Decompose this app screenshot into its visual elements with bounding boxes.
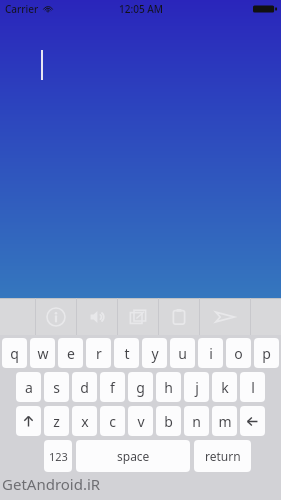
staticText: i bbox=[209, 344, 213, 363]
staticText: GetAndroid.iR bbox=[2, 474, 101, 494]
button[interactable]: Sound bbox=[77, 298, 117, 335]
button[interactable]: g bbox=[128, 372, 153, 402]
button[interactable]: c bbox=[100, 406, 125, 436]
button[interactable]: k bbox=[212, 372, 237, 402]
button[interactable]: o bbox=[226, 338, 251, 368]
button[interactable]: d bbox=[72, 372, 97, 402]
staticText: n bbox=[192, 412, 201, 431]
button[interactable]: n bbox=[184, 406, 209, 436]
button[interactable]: z bbox=[44, 406, 69, 436]
staticText: t bbox=[124, 344, 130, 363]
button[interactable]: v bbox=[128, 406, 153, 436]
button[interactable]: space bbox=[76, 440, 190, 472]
button[interactable]: s bbox=[44, 372, 69, 402]
button[interactable]: j bbox=[184, 372, 209, 402]
staticText: space bbox=[117, 448, 150, 464]
button[interactable]: return bbox=[194, 440, 251, 472]
button[interactable]: u bbox=[170, 338, 195, 368]
button[interactable]: h bbox=[156, 372, 181, 402]
button[interactable]: q bbox=[2, 338, 27, 368]
button[interactable]: a bbox=[16, 372, 41, 402]
staticText: a bbox=[25, 378, 33, 397]
button[interactable]: i bbox=[198, 338, 223, 368]
staticText: 123 bbox=[49, 449, 68, 464]
staticText: l bbox=[251, 378, 255, 397]
staticText: z bbox=[53, 412, 60, 431]
staticText: g bbox=[136, 378, 145, 397]
button[interactable]: l bbox=[240, 372, 265, 402]
button[interactable]: e bbox=[58, 338, 83, 368]
staticText: v bbox=[137, 412, 145, 431]
staticText: s bbox=[53, 378, 60, 397]
button[interactable]: f bbox=[100, 372, 125, 402]
staticText: k bbox=[221, 378, 229, 397]
button[interactable]: b bbox=[156, 406, 181, 436]
staticText: h bbox=[164, 378, 173, 397]
button[interactable]: Info bbox=[36, 298, 76, 335]
staticText: e bbox=[67, 344, 75, 363]
staticText: w bbox=[37, 344, 49, 363]
staticText: 12:05 AM bbox=[119, 2, 163, 16]
staticText: Carrier bbox=[5, 2, 39, 16]
button[interactable]: p bbox=[254, 338, 279, 368]
button[interactable]: w bbox=[30, 338, 55, 368]
staticText: f bbox=[110, 378, 115, 397]
button[interactable]: y bbox=[142, 338, 167, 368]
staticText: o bbox=[234, 344, 243, 363]
staticText: y bbox=[151, 344, 159, 363]
staticText: return bbox=[205, 448, 241, 464]
button[interactable]: 123 bbox=[44, 440, 72, 472]
staticText: b bbox=[164, 412, 173, 431]
button[interactable]: Clipboard bbox=[159, 298, 199, 335]
staticText: j bbox=[195, 378, 199, 397]
button[interactable]: m bbox=[212, 406, 237, 436]
button[interactable]: Photo bbox=[118, 298, 158, 335]
button[interactable]: Send bbox=[200, 298, 250, 335]
staticText: u bbox=[178, 344, 187, 363]
staticText: p bbox=[262, 344, 271, 363]
button[interactable]: r bbox=[86, 338, 111, 368]
button[interactable]: t bbox=[114, 338, 139, 368]
staticText: d bbox=[80, 378, 89, 397]
staticText: x bbox=[81, 412, 89, 431]
staticText: c bbox=[109, 412, 116, 431]
staticText: r bbox=[96, 344, 102, 363]
staticText: m bbox=[218, 412, 232, 431]
button[interactable]: Backspace bbox=[240, 406, 265, 436]
button[interactable]: x bbox=[72, 406, 97, 436]
button[interactable]: Shift bbox=[16, 406, 41, 436]
staticText: q bbox=[10, 344, 19, 363]
